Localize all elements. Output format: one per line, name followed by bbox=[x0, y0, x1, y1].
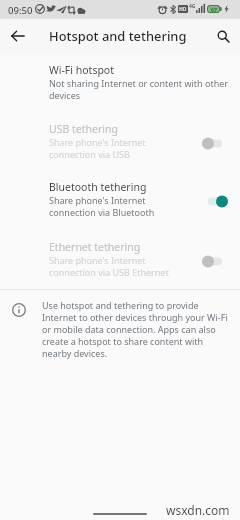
staticText: Share phone's Internet bbox=[49, 136, 146, 148]
staticText: Ethernet tethering bbox=[49, 240, 141, 254]
staticText: Use hotspot and tethering to provide bbox=[42, 299, 199, 311]
button[interactable]: USB tethering bbox=[0, 120, 240, 170]
staticText: connection via Bluetooth bbox=[49, 206, 155, 218]
staticText: 09:50 bbox=[8, 4, 33, 17]
staticText: connection via USB Ethernet bbox=[49, 266, 169, 278]
button[interactable]: Ethernet tethering off bbox=[202, 255, 222, 268]
staticText: Share phone's Internet bbox=[49, 194, 146, 206]
staticText: Wi-Fi hotspot bbox=[49, 63, 115, 77]
staticText: Hotspot and tethering bbox=[49, 27, 187, 45]
staticText: Bluetooth tethering bbox=[49, 180, 147, 194]
staticText: 4G bbox=[189, 3, 196, 10]
staticText: or mobile data connection. Apps can also bbox=[42, 323, 216, 335]
staticText: create a hotspot to share content with bbox=[42, 335, 204, 347]
button[interactable]: Bluetooth tethering on bbox=[208, 195, 228, 208]
button[interactable]: Back bbox=[5, 23, 31, 49]
staticText: USB tethering bbox=[49, 122, 118, 136]
button[interactable]: Ethernet tethering bbox=[0, 238, 240, 288]
staticText: Not sharing Internet or content with oth… bbox=[49, 77, 229, 89]
staticText: connection via USB bbox=[49, 148, 130, 160]
staticText: wsxdn.com bbox=[166, 502, 230, 518]
staticText: Share phone's Internet bbox=[49, 254, 146, 266]
button[interactable]: Bluetooth tethering bbox=[0, 178, 240, 228]
button[interactable]: Wi-Fi hotspot bbox=[0, 61, 240, 111]
button[interactable]: Search bbox=[210, 23, 236, 49]
staticText: Internet to other devices through your W… bbox=[42, 311, 228, 323]
staticText: HD bbox=[179, 6, 187, 13]
staticText: devices bbox=[49, 89, 81, 101]
button[interactable]: USB tethering off bbox=[202, 137, 222, 150]
staticText: nearby devices. bbox=[42, 347, 108, 359]
staticText: 67 bbox=[211, 6, 217, 13]
